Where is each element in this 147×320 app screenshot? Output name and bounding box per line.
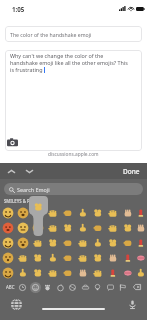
staticText: handshake emoji like all the other emoji… [10,59,128,66]
button[interactable]: Emoji [30,205,45,220]
button[interactable]: Emoji [105,220,120,235]
button[interactable]: Change keyboard [9,297,23,311]
button[interactable]: Emoji [30,250,45,265]
button[interactable]: Emoji [135,235,147,250]
button[interactable]: Emoji [15,235,30,250]
button[interactable]: Emoji [135,205,147,220]
button[interactable]: Emoji [0,235,15,250]
button[interactable]: Emoji [15,220,30,235]
button[interactable]: Emoji [0,250,15,265]
staticText: The color of the handshake emoji [10,31,92,38]
button[interactable]: Emoji [90,250,105,265]
button[interactable]: Backspace [130,280,144,294]
button[interactable]: Emoji [0,265,15,280]
button[interactable]: Dictate [126,298,138,310]
button[interactable]: Emoji [120,205,135,220]
staticText: ABC [6,284,15,290]
button[interactable]: Emoji [15,250,30,265]
button[interactable]: Category 3 [41,280,53,294]
button[interactable]: Emoji [60,220,75,235]
button[interactable]: Insert photo [5,135,20,150]
button[interactable]: Search Emoji [4,183,143,195]
button[interactable]: Emoji [105,265,120,280]
button[interactable]: Category 5 [66,280,78,294]
button[interactable]: Previous field [5,165,17,177]
staticText: Search Emoji [17,186,50,193]
button[interactable]: Category 2 [29,280,41,294]
staticText: 1:05 [12,5,25,13]
button[interactable]: Emoji [45,205,60,220]
button[interactable]: Emoji [15,265,30,280]
staticText: SMILEYS & PEOPLE [4,198,43,204]
button[interactable]: Emoji [105,250,120,265]
button[interactable]: Category 8 [104,280,116,294]
button[interactable]: Emoji [0,205,15,220]
button[interactable]: Emoji [90,235,105,250]
button[interactable]: Emoji [105,205,120,220]
button[interactable]: Done [123,167,140,176]
button[interactable]: Emoji [120,220,135,235]
staticText: is frustrating [10,66,43,73]
button[interactable]: Emoji [120,250,135,265]
button[interactable]: Emoji [75,265,90,280]
button[interactable]: Emoji [75,235,90,250]
staticText: discussions.apple.com [48,151,99,158]
button[interactable]: Emoji [60,235,75,250]
staticText: Why can't we change the color of the [10,52,104,59]
button[interactable]: Emoji [90,205,105,220]
button[interactable]: Next field [23,165,35,177]
button[interactable]: Emoji [75,205,90,220]
button[interactable]: Emoji [135,250,147,265]
button[interactable]: Emoji [105,235,120,250]
button[interactable]: ABC [1,280,19,294]
button[interactable]: Emoji [75,250,90,265]
button[interactable]: Emoji [45,235,60,250]
button[interactable]: Why can't we change the color of the [5,50,142,151]
button[interactable]: Category 4 [54,280,66,294]
button[interactable]: Emoji [45,220,60,235]
button[interactable]: Category 9 [116,280,128,294]
button[interactable]: Category 1 [16,280,28,294]
button[interactable]: Emoji [120,265,135,280]
button[interactable]: Emoji [60,265,75,280]
button[interactable]: Emoji [30,220,45,235]
button[interactable]: The color of the handshake emoji [5,26,142,42]
button[interactable]: Emoji [75,220,90,235]
staticText: Done [123,167,140,176]
button[interactable]: Emoji [60,205,75,220]
button[interactable]: Emoji [90,265,105,280]
button[interactable]: Category 6 [79,280,91,294]
button[interactable]: Emoji [15,205,30,220]
button[interactable]: Emoji [30,235,45,250]
button[interactable]: Emoji [45,250,60,265]
button[interactable]: Emoji [135,220,147,235]
button[interactable]: Emoji [0,220,15,235]
button[interactable]: Emoji [135,265,147,280]
button[interactable]: Emoji [90,220,105,235]
button[interactable]: Emoji [120,235,135,250]
button[interactable]: Emoji [60,250,75,265]
button[interactable]: Emoji [45,265,60,280]
button[interactable]: Emoji [30,265,45,280]
button[interactable]: Category 7 [91,280,103,294]
